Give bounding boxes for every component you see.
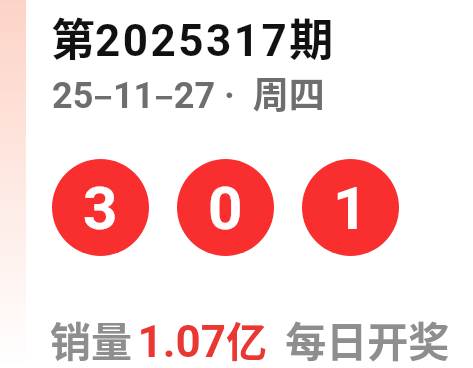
staticText: 3 [83,173,118,243]
staticText: 0 [208,173,243,243]
button[interactable]: 0 [177,159,274,256]
staticText: 销量 1.07亿 每日开奖 [50,309,450,368]
staticText: 25–11–27 · 周四 [52,66,325,118]
staticText: 第2025317期 [51,5,334,69]
staticText: 1 [333,173,368,243]
button[interactable]: 3 [52,159,149,256]
button[interactable]: 1 [302,159,399,256]
